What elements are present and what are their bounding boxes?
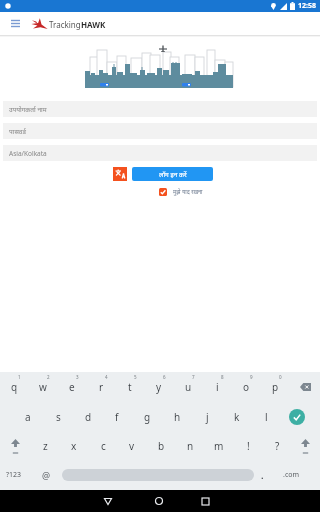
staticText: ! bbox=[247, 439, 250, 453]
button[interactable]: मुझे याद रखना bbox=[159, 188, 203, 196]
button[interactable]: b bbox=[151, 433, 171, 459]
staticText: z bbox=[43, 439, 48, 453]
button[interactable]: j bbox=[197, 404, 217, 430]
button[interactable]: r bbox=[91, 374, 111, 400]
button[interactable] bbox=[62, 469, 254, 481]
button[interactable]: Asia/Kolkata bbox=[3, 145, 317, 161]
staticText: HAWK bbox=[81, 19, 106, 30]
staticText: u bbox=[185, 380, 192, 394]
staticText: k bbox=[234, 410, 240, 424]
button[interactable]: u bbox=[178, 374, 198, 400]
button[interactable]: q bbox=[4, 374, 24, 400]
staticText: 4 bbox=[105, 374, 108, 380]
button[interactable]: n bbox=[180, 433, 200, 459]
button[interactable] bbox=[297, 379, 313, 395]
button[interactable]: p bbox=[265, 374, 285, 400]
button[interactable]: m bbox=[209, 433, 229, 459]
button[interactable]: x bbox=[64, 433, 84, 459]
button[interactable] bbox=[101, 494, 115, 508]
button[interactable]: w bbox=[33, 374, 53, 400]
staticText: s bbox=[56, 410, 61, 424]
staticText: @ bbox=[42, 469, 51, 481]
button[interactable] bbox=[152, 494, 166, 508]
button[interactable]: g bbox=[137, 404, 157, 430]
staticText: d bbox=[85, 410, 92, 424]
button[interactable]: d bbox=[78, 404, 98, 430]
button[interactable] bbox=[198, 494, 212, 508]
button[interactable]: ?123 bbox=[6, 470, 22, 480]
staticText: 3 bbox=[76, 374, 79, 380]
button[interactable]: लॉग इन करें bbox=[132, 167, 213, 181]
staticText: मुझे याद रखना bbox=[173, 188, 203, 196]
staticText: उपयोगकर्ता नाम bbox=[9, 105, 47, 114]
staticText: h bbox=[174, 410, 181, 424]
button[interactable]: z bbox=[35, 433, 55, 459]
button[interactable]: पासवर्ड bbox=[3, 123, 317, 139]
button[interactable]: .com bbox=[283, 470, 300, 480]
staticText: x bbox=[71, 439, 77, 453]
button[interactable]: h bbox=[167, 404, 187, 430]
button[interactable]: k bbox=[227, 404, 247, 430]
staticText: j bbox=[206, 410, 209, 424]
button[interactable]: ? bbox=[267, 433, 287, 459]
button[interactable]: y bbox=[149, 374, 169, 400]
button[interactable]: ! bbox=[238, 433, 258, 459]
button[interactable]: e bbox=[62, 374, 82, 400]
button[interactable]: s bbox=[48, 404, 68, 430]
staticText: 9 bbox=[250, 374, 253, 380]
staticText: p bbox=[272, 380, 279, 394]
button[interactable]: o bbox=[236, 374, 256, 400]
staticText: f bbox=[115, 410, 119, 424]
button[interactable]: f bbox=[107, 404, 127, 430]
button[interactable] bbox=[6, 435, 24, 457]
staticText: b bbox=[158, 439, 165, 453]
button[interactable]: l bbox=[256, 404, 276, 430]
staticText: 7 bbox=[192, 374, 195, 380]
staticText: a bbox=[25, 410, 31, 424]
staticText: 6 bbox=[163, 374, 166, 380]
staticText: ? bbox=[275, 439, 280, 453]
button[interactable] bbox=[296, 435, 314, 457]
staticText: q bbox=[11, 380, 18, 394]
staticText: . bbox=[261, 469, 264, 481]
staticText: पासवर्ड bbox=[9, 127, 26, 136]
staticText: r bbox=[99, 380, 104, 394]
staticText: y bbox=[156, 380, 162, 394]
staticText: 1 bbox=[18, 374, 21, 380]
staticText: l bbox=[265, 410, 268, 424]
staticText: Tracking bbox=[49, 19, 81, 30]
button[interactable] bbox=[4, 12, 27, 35]
staticText: ?123 bbox=[6, 470, 22, 480]
button[interactable]: @ bbox=[42, 469, 51, 481]
staticText: v bbox=[129, 439, 135, 453]
staticText: w bbox=[39, 380, 47, 394]
button[interactable]: Tracking bbox=[31, 18, 106, 30]
button[interactable] bbox=[113, 167, 127, 181]
button[interactable]: c bbox=[93, 433, 113, 459]
staticText: m bbox=[214, 439, 224, 453]
staticText: 0 bbox=[279, 374, 282, 380]
staticText: 5 bbox=[134, 374, 137, 380]
button[interactable]: v bbox=[122, 433, 142, 459]
button[interactable]: . bbox=[261, 469, 264, 481]
staticText: 8 bbox=[221, 374, 224, 380]
staticText: 12:58 bbox=[298, 1, 316, 11]
staticText: लॉग इन करें bbox=[159, 170, 187, 179]
staticText: o bbox=[243, 380, 250, 394]
button[interactable]: t bbox=[120, 374, 140, 400]
staticText: g bbox=[144, 410, 151, 424]
staticText: n bbox=[187, 439, 194, 453]
staticText: 2 bbox=[47, 374, 50, 380]
staticText: c bbox=[101, 439, 106, 453]
button[interactable]: उपयोगकर्ता नाम bbox=[3, 101, 317, 117]
button[interactable]: a bbox=[18, 404, 38, 430]
staticText: e bbox=[69, 380, 75, 394]
staticText: i bbox=[216, 380, 219, 394]
button[interactable]: i bbox=[207, 374, 227, 400]
button[interactable] bbox=[289, 409, 305, 425]
staticText: .com bbox=[283, 470, 300, 480]
staticText: Asia/Kolkata bbox=[9, 149, 47, 158]
staticText: t bbox=[128, 380, 132, 394]
